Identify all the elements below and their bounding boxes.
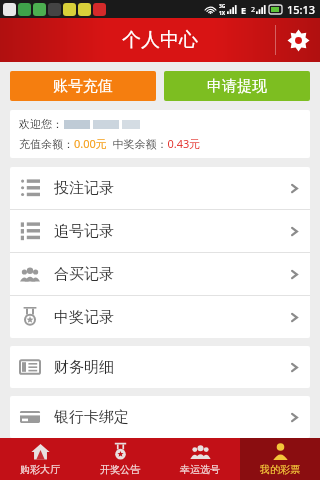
button[interactable]: 财务明细 — [10, 346, 310, 388]
staticText: 申请提现 — [207, 77, 267, 96]
staticText: 购彩大厅 — [20, 463, 60, 476]
button[interactable]: 银行卡绑定 — [10, 396, 310, 438]
staticText: 开奖公告 — [100, 463, 140, 476]
staticText: E — [241, 4, 247, 16]
button[interactable]: 投注记录 — [10, 167, 310, 210]
staticText: 欢迎您： — [19, 117, 63, 131]
button[interactable]: 购彩大厅 — [0, 438, 80, 480]
staticText: 中奖记录 — [54, 308, 114, 327]
button[interactable]: 幸运选号 — [160, 438, 240, 480]
staticText: 追号记录 — [54, 222, 114, 241]
staticText: 财务明细 — [54, 358, 114, 377]
button[interactable]: 开奖公告 — [80, 438, 160, 480]
button[interactable]: 合买记录 — [10, 253, 310, 296]
staticText: 账号充值 — [53, 77, 113, 96]
staticText: 银行卡绑定 — [54, 408, 129, 427]
staticText: 充值余额：0.00元 中奖余额：0.43元 — [19, 136, 201, 151]
staticText: 幸运选号 — [180, 463, 220, 476]
button[interactable]: 账号充值 — [10, 71, 156, 101]
staticText: 1X — [219, 10, 226, 17]
button[interactable]: 我的彩票 — [240, 438, 320, 480]
staticText: 2 — [251, 5, 256, 15]
staticText: 投注记录 — [54, 179, 114, 198]
button[interactable]: 设置 — [276, 18, 320, 62]
staticText: 个人中心 — [122, 28, 198, 52]
staticText: 我的彩票 — [260, 463, 300, 476]
button[interactable]: 中奖记录 — [10, 296, 310, 338]
staticText: 合买记录 — [54, 265, 114, 284]
button[interactable]: 申请提现 — [164, 71, 310, 101]
staticText: 3G — [219, 3, 226, 10]
staticText: 15:13 — [287, 2, 316, 17]
button[interactable]: 追号记录 — [10, 210, 310, 253]
